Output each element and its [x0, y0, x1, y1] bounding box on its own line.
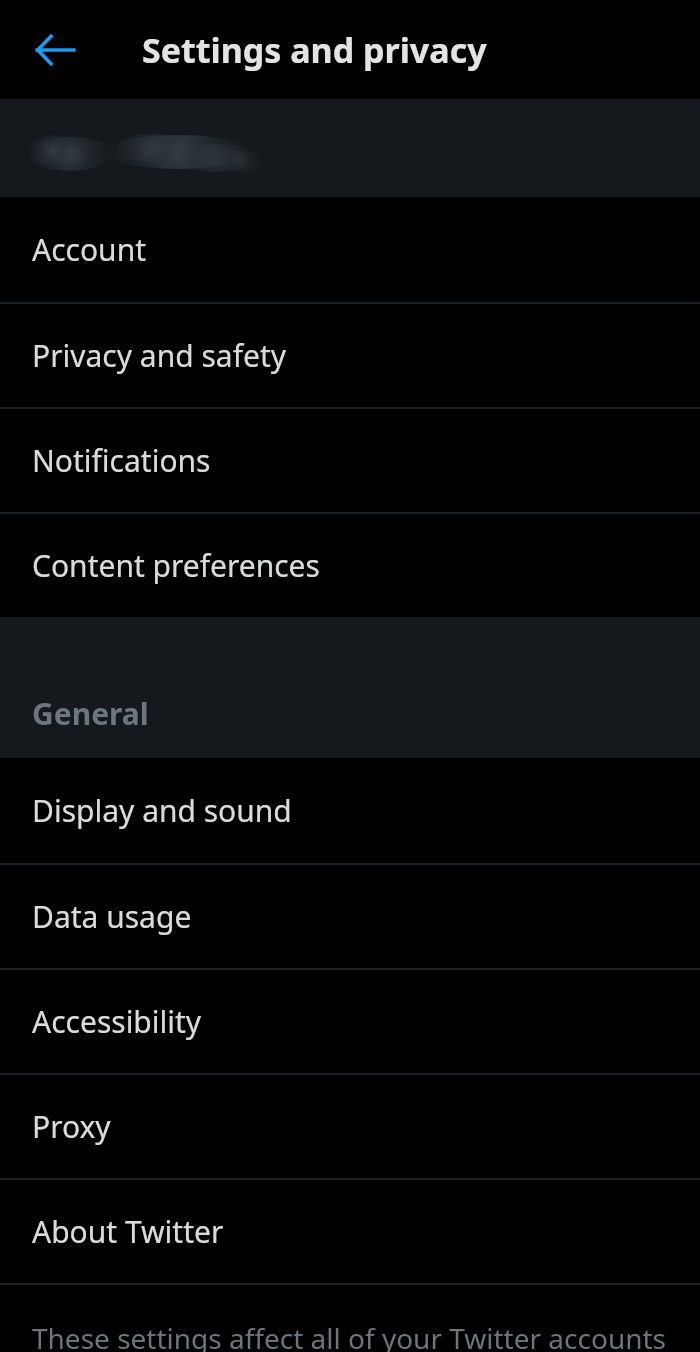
staticText: Settings and privacy: [142, 27, 487, 73]
button[interactable]: Proxy: [0, 1075, 700, 1178]
button[interactable]: Account: [0, 197, 700, 302]
staticText: These settings affect all of your Twitte…: [32, 1319, 676, 1352]
button[interactable]: Back: [18, 13, 92, 87]
staticText: Proxy: [32, 1106, 111, 1147]
button[interactable]: About Twitter: [0, 1180, 700, 1283]
staticText: Account: [32, 229, 147, 270]
staticText: Notifications: [32, 440, 211, 481]
staticText: Display and sound: [32, 790, 292, 831]
button[interactable]: Content preferences: [0, 514, 700, 617]
button[interactable]: Notifications: [0, 409, 700, 512]
staticText: Data usage: [32, 896, 192, 937]
staticText: About Twitter: [32, 1211, 224, 1252]
button[interactable]: Data usage: [0, 865, 700, 968]
button[interactable]: Account name: [0, 99, 700, 197]
staticText: Accessibility: [32, 1001, 202, 1042]
button[interactable]: Privacy and safety: [0, 304, 700, 407]
staticText: Content preferences: [32, 545, 320, 586]
staticText: Privacy and safety: [32, 335, 287, 376]
staticText: General: [32, 693, 149, 734]
button[interactable]: Accessibility: [0, 970, 700, 1073]
button[interactable]: Display and sound: [0, 758, 700, 863]
